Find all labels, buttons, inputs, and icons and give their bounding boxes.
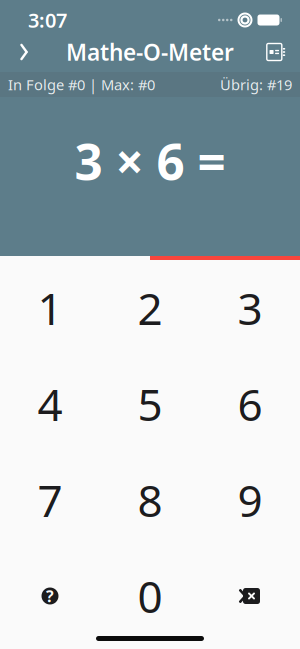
- button[interactable]: 3: [200, 260, 300, 356]
- staticText: 2: [137, 279, 162, 337]
- button[interactable]: 8: [100, 452, 200, 548]
- staticText: 1: [37, 279, 62, 337]
- staticText: 3:07: [28, 7, 67, 33]
- staticText: 4: [37, 375, 62, 433]
- button[interactable]: 4: [0, 356, 100, 452]
- button[interactable]: 9: [200, 452, 300, 548]
- staticText: ?: [46, 585, 54, 607]
- button[interactable]: 2: [100, 260, 200, 356]
- button[interactable]: 1: [0, 260, 100, 356]
- staticText: 5: [137, 375, 162, 433]
- button[interactable]: 6: [200, 356, 300, 452]
- button[interactable]: Contacts: [254, 30, 298, 74]
- button[interactable]: 0: [100, 548, 200, 644]
- staticText: Mathe-O-Meter: [66, 37, 234, 67]
- staticText: Übrig: #19: [220, 75, 292, 94]
- staticText: 8: [137, 471, 162, 529]
- button[interactable]: 7: [0, 452, 100, 548]
- button[interactable]: Help: [0, 548, 100, 644]
- button[interactable]: Delete: [200, 548, 300, 644]
- staticText: 7: [37, 471, 62, 529]
- staticText: 3: [237, 279, 262, 337]
- button[interactable]: 5: [100, 356, 200, 452]
- staticText: In Folge #0 | Max: #0: [8, 75, 155, 94]
- button[interactable]: Back: [2, 30, 46, 74]
- staticText: 3 × 6 =: [74, 128, 225, 194]
- staticText: 0: [137, 567, 162, 625]
- staticText: 6: [237, 375, 262, 433]
- staticText: 9: [237, 471, 262, 529]
